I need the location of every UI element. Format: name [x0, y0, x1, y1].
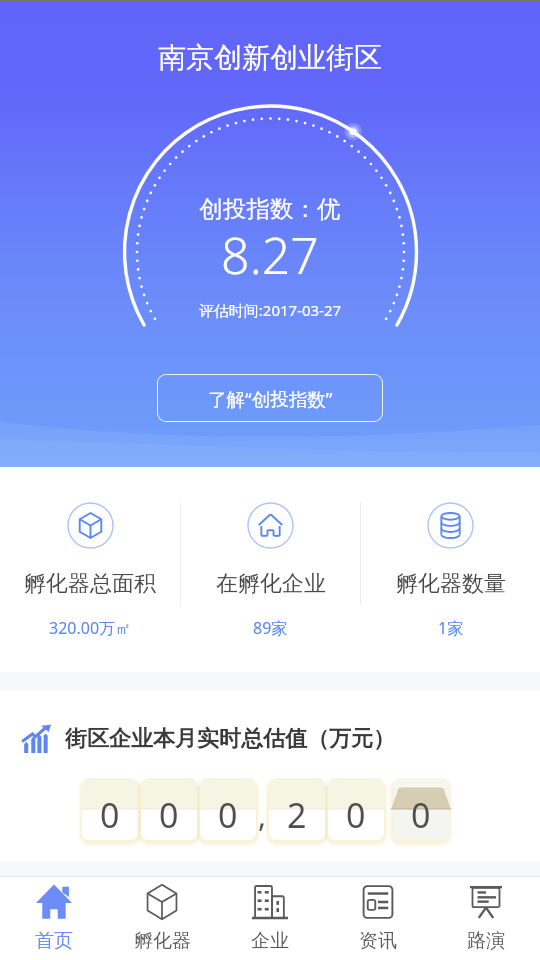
- staticText: 320.00万㎡: [49, 617, 132, 639]
- staticText: 评估时间:2017-03-27: [0, 300, 540, 320]
- staticText: 1家: [438, 617, 464, 639]
- button[interactable]: 在孵化企业: [181, 467, 360, 672]
- button[interactable]: News: [324, 877, 432, 960]
- button[interactable]: 了解“创投指数”: [157, 374, 383, 422]
- staticText: 街区企业本月实时总估值（万元）: [65, 725, 395, 753]
- button[interactable]: Incubator: [108, 877, 216, 960]
- button[interactable]: Home: [0, 877, 108, 960]
- staticText: 89家: [253, 617, 288, 639]
- staticText: ,: [258, 795, 267, 836]
- staticText: 首页: [35, 929, 73, 953]
- staticText: 孵化器数量: [396, 570, 506, 598]
- staticText: 0: [159, 792, 179, 838]
- staticText: 2: [287, 792, 307, 838]
- staticText: 0: [100, 792, 120, 838]
- staticText: 孵化器: [134, 929, 191, 953]
- staticText: 0: [346, 792, 366, 838]
- staticText: 资讯: [359, 929, 397, 953]
- button[interactable]: 孵化器总面积: [0, 467, 180, 672]
- staticText: 创投指数：优: [0, 194, 540, 224]
- button[interactable]: Roadshow: [432, 877, 540, 960]
- staticText: 8.27: [0, 221, 540, 289]
- button[interactable]: 孵化器数量: [361, 467, 540, 672]
- button[interactable]: Enterprise: [216, 877, 324, 960]
- staticText: 了解“创投指数”: [208, 386, 333, 411]
- staticText: 孵化器总面积: [24, 570, 156, 598]
- staticText: 0: [218, 792, 238, 838]
- staticText: 企业: [251, 929, 289, 953]
- staticText: 在孵化企业: [216, 570, 326, 598]
- staticText: 路演: [467, 929, 505, 953]
- staticText: 0: [411, 792, 431, 838]
- staticText: 南京创新创业街区: [0, 40, 540, 75]
